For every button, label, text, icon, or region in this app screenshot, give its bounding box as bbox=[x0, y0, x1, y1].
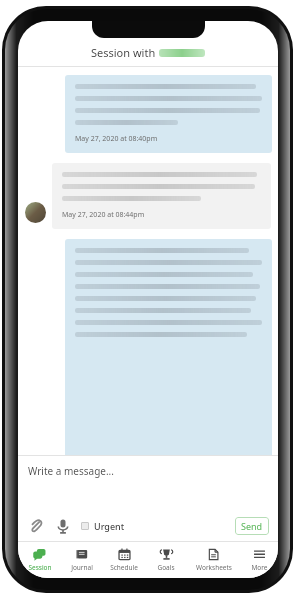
staticText: Schedule bbox=[110, 563, 138, 572]
staticText: Urgent bbox=[94, 520, 125, 532]
button[interactable]: Goals bbox=[145, 542, 187, 578]
button[interactable]: Record voice message bbox=[54, 517, 72, 535]
staticText: Send bbox=[241, 520, 263, 532]
button[interactable]: Send bbox=[235, 517, 269, 535]
staticText: Journal bbox=[71, 563, 93, 572]
button[interactable]: More bbox=[240, 542, 278, 578]
staticText: Session with bbox=[91, 45, 159, 60]
button[interactable] bbox=[65, 239, 272, 455]
button[interactable]: Journal bbox=[61, 542, 103, 578]
staticText: May 27, 2020 at 08:44pm bbox=[62, 210, 145, 220]
staticText: Session bbox=[28, 563, 52, 572]
button[interactable]: Worksheets bbox=[187, 542, 240, 578]
staticText: More bbox=[251, 563, 268, 572]
other: Therapist avatar bbox=[25, 202, 46, 223]
button[interactable]: May 27, 2020 at 08:40pm bbox=[65, 75, 272, 153]
staticText: May 27, 2020 at 08:40pm bbox=[75, 134, 158, 144]
button[interactable]: May 27, 2020 at 08:44pm bbox=[52, 163, 271, 229]
staticText: Write a message... bbox=[28, 464, 114, 478]
button[interactable]: Attach file bbox=[27, 517, 45, 535]
button[interactable]: Write a message... bbox=[18, 456, 278, 511]
staticText: Worksheets bbox=[196, 563, 232, 572]
button[interactable]: Session bbox=[18, 542, 61, 578]
staticText: Goals bbox=[157, 563, 175, 572]
button[interactable]: Urgent bbox=[81, 520, 125, 532]
button[interactable]: Schedule bbox=[103, 542, 145, 578]
